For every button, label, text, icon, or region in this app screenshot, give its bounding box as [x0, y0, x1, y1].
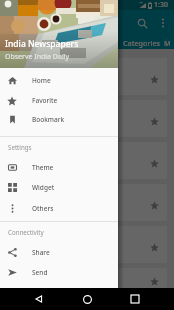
- staticText: 1:30: [154, 0, 168, 10]
- button[interactable]: Send: [0, 263, 118, 282]
- staticText: Theme: [32, 163, 54, 172]
- button[interactable]: Favourite: [7, 100, 167, 137]
- button[interactable]: Categories: [119, 36, 164, 49]
- button[interactable]: Papers: [57, 36, 119, 49]
- button[interactable]: Favourite: [150, 201, 159, 210]
- button[interactable]: Others: [0, 199, 118, 218]
- button[interactable]: Favourite: [150, 159, 159, 168]
- button[interactable]: Recent apps: [126, 290, 144, 308]
- button[interactable]: More options: [154, 14, 172, 32]
- button[interactable]: Share: [0, 243, 118, 262]
- button[interactable]: Home: [78, 290, 96, 308]
- button[interactable]: Home: [0, 71, 118, 90]
- staticText: Papers: [76, 38, 100, 48]
- button[interactable]: Favourite: [150, 277, 159, 286]
- button[interactable]: Favourite: [7, 226, 167, 263]
- button[interactable]: Favourite: [150, 243, 159, 252]
- button[interactable]: Bookmark: [0, 110, 118, 129]
- button[interactable]: Favourite: [7, 268, 167, 288]
- staticText: Share: [32, 248, 50, 257]
- button[interactable]: Favourite: [7, 58, 167, 95]
- button[interactable]: Favorite: [0, 91, 118, 110]
- staticText: Favorite: [32, 96, 58, 105]
- button[interactable]: Favourite: [150, 75, 159, 84]
- staticText: Home: [32, 76, 51, 85]
- button[interactable]: News: [0, 36, 57, 49]
- staticText: Bookmark: [32, 115, 65, 124]
- staticText: Send: [32, 268, 48, 277]
- staticText: Connectivity: [8, 228, 44, 236]
- button[interactable]: Search: [131, 12, 153, 34]
- staticText: Settings: [8, 143, 32, 151]
- staticText: India Newspapers: [5, 38, 79, 50]
- staticText: More: [164, 38, 171, 48]
- staticText: Others: [32, 204, 54, 213]
- button[interactable]: Widget: [0, 178, 118, 197]
- staticText: Observe India Daily: [5, 52, 70, 62]
- button[interactable]: Back: [30, 290, 48, 308]
- button[interactable]: More: [164, 36, 171, 49]
- staticText: News: [18, 38, 37, 48]
- button[interactable]: Favourite: [150, 117, 159, 126]
- staticText: Widget: [32, 183, 55, 192]
- button[interactable]: Favourite: [7, 184, 167, 221]
- button[interactable]: Favourite: [7, 142, 167, 179]
- staticText: Categories: [123, 38, 161, 48]
- button[interactable]: Theme: [0, 158, 118, 177]
